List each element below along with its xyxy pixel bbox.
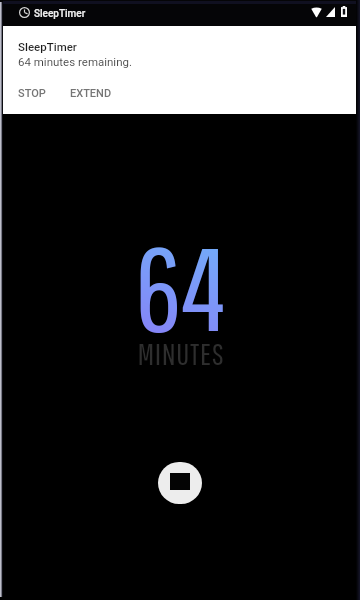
staticText: MINUTES — [137, 335, 225, 371]
staticText: 64 minutes remaining. — [18, 55, 133, 68]
staticText: 64 — [135, 220, 226, 354]
staticText: SleepTimer — [18, 40, 77, 53]
button[interactable]: STOP — [18, 87, 46, 100]
staticText: EXTEND — [70, 87, 112, 100]
staticText: STOP — [18, 87, 46, 100]
staticText: SleepTimer — [34, 8, 86, 20]
button[interactable]: Stop — [158, 462, 202, 504]
button[interactable]: EXTEND — [70, 87, 112, 100]
